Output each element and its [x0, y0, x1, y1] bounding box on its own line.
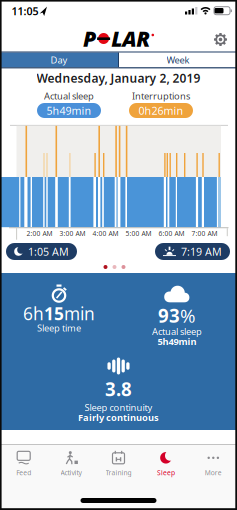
staticText: Training: [105, 468, 131, 477]
staticText: Sleep: [157, 468, 175, 477]
staticText: Interruptions: [132, 90, 190, 102]
staticText: 7:00 AM: [191, 229, 217, 238]
staticText: Fairly continuous: [78, 411, 159, 424]
staticText: Feed: [16, 468, 31, 477]
staticText: 6:00 AM: [158, 229, 184, 238]
staticText: Sleep continuity: [84, 401, 152, 414]
staticText: Week: [166, 54, 189, 66]
staticText: More: [205, 468, 222, 477]
button[interactable]: Feed: [0, 449, 47, 479]
staticText: 15: [44, 302, 64, 325]
staticText: 11:05: [11, 4, 38, 18]
staticText: Actual sleep: [44, 90, 94, 102]
staticText: %: [180, 303, 196, 328]
staticText: 6h: [23, 302, 44, 325]
staticText: min: [64, 302, 95, 325]
staticText: Wednesday, January 2, 2019: [36, 70, 200, 86]
staticText: 5h49min: [46, 103, 91, 118]
staticText: Actual sleep: [152, 325, 202, 338]
button[interactable]: Settings: [211, 30, 229, 48]
button[interactable]: Activity: [47, 449, 95, 479]
button[interactable]: Training: [95, 449, 142, 479]
button[interactable]: Week: [119, 53, 237, 67]
button[interactable]: Day: [0, 53, 118, 67]
staticText: Activity: [61, 468, 82, 477]
button[interactable]: 7:19 AM: [155, 243, 230, 260]
staticText: 5:00 AM: [125, 229, 151, 238]
staticText: 93: [158, 303, 180, 328]
button[interactable]: Sleep: [142, 449, 190, 479]
staticText: 7:19 AM: [181, 244, 222, 259]
staticText: 3.8: [105, 377, 132, 401]
staticText: 2:00 AM: [26, 229, 52, 238]
button[interactable]: More: [190, 449, 237, 479]
staticText: 0h26min: [138, 103, 183, 118]
staticText: P: [83, 24, 96, 53]
staticText: 4:00 AM: [92, 229, 118, 238]
staticText: 1:05 AM: [28, 244, 69, 259]
button[interactable]: 0h26min: [129, 103, 193, 118]
staticText: Day: [50, 54, 67, 66]
button[interactable]: 5h49min: [37, 103, 101, 118]
staticText: 5h49min: [157, 335, 196, 348]
button[interactable]: 1:05 AM: [6, 243, 77, 260]
staticText: LAR: [111, 24, 150, 53]
staticText: Sleep time: [37, 322, 81, 334]
staticText: 3:00 AM: [59, 229, 85, 238]
